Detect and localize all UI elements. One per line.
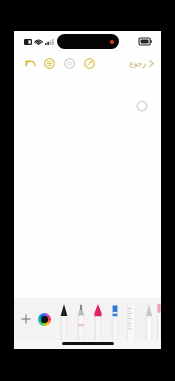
button[interactable]: Pencil bbox=[72, 298, 89, 340]
button[interactable]: Camera bbox=[62, 56, 76, 70]
staticText: رجوع bbox=[129, 59, 146, 68]
button[interactable]: Undo bbox=[22, 55, 38, 71]
button[interactable]: Color picker bbox=[35, 298, 53, 340]
button[interactable]: Ruler bbox=[123, 298, 140, 340]
button[interactable]: Pen bbox=[55, 298, 72, 340]
button[interactable]: Format bbox=[42, 56, 56, 70]
button[interactable]: Highlighter bbox=[106, 298, 123, 340]
button[interactable]: Fill bbox=[157, 298, 161, 340]
button[interactable]: Add tool bbox=[19, 298, 33, 340]
button[interactable]: Eraser bbox=[140, 298, 157, 340]
button[interactable]: Shapes bbox=[82, 56, 96, 70]
button[interactable]: Marker bbox=[89, 298, 106, 340]
button[interactable]: رجوع bbox=[126, 58, 158, 69]
